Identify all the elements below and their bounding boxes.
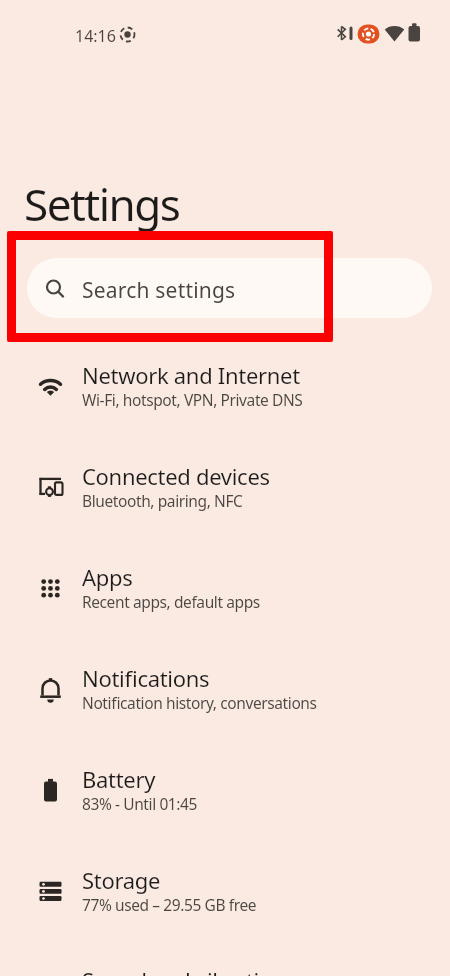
button[interactable]: Sound and vibration <box>0 941 450 976</box>
staticText: Notification history, conversations <box>82 692 317 713</box>
staticText: Recent apps, default apps <box>82 591 260 612</box>
button[interactable]: Connected devices <box>0 437 450 538</box>
staticText: Sound and vibration <box>82 965 286 976</box>
staticText: Network and Internet <box>82 360 300 390</box>
staticText: Connected devices <box>82 461 270 491</box>
button[interactable]: Battery <box>0 740 450 841</box>
staticText: Search settings <box>82 276 236 305</box>
staticText: Settings <box>24 174 180 234</box>
staticText: Wi-Fi, hotspot, VPN, Private DNS <box>82 389 303 410</box>
button[interactable]: Storage <box>0 841 450 942</box>
staticText: Apps <box>82 562 133 592</box>
staticText: 83% - Until 01:45 <box>82 793 198 814</box>
button[interactable]: Network and Internet <box>0 336 450 437</box>
button[interactable]: Search settings <box>27 258 432 318</box>
staticText: Battery <box>82 764 156 794</box>
staticText: 77% used – 29.55 GB free <box>82 894 257 915</box>
staticText: Storage <box>82 865 161 895</box>
button[interactable]: Notifications <box>0 639 450 740</box>
staticText: 14:16 <box>75 25 116 47</box>
staticText: Notifications <box>82 663 210 693</box>
button[interactable]: Apps <box>0 538 450 639</box>
staticText: Bluetooth, pairing, NFC <box>82 490 243 511</box>
